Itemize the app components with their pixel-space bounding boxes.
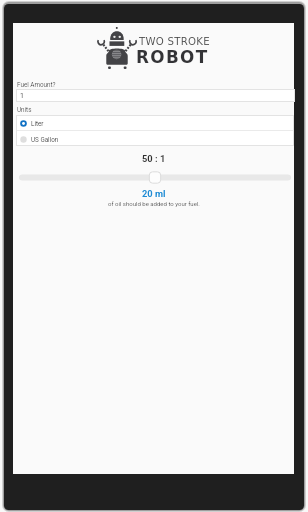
staticText: Liter: [31, 120, 44, 127]
staticText: ROBOT: [136, 47, 209, 67]
staticText: 20 ml: [142, 188, 166, 199]
staticText: of oil should be added to your fuel.: [108, 200, 200, 207]
button[interactable]: 1: [16, 89, 295, 102]
other: Two Stroke Robot logo: [97, 27, 137, 69]
staticText: Fuel Amount?: [17, 81, 56, 88]
button[interactable]: Liter: [16, 115, 294, 131]
staticText: 1: [20, 92, 24, 100]
staticText: 50 : 1: [142, 153, 166, 164]
staticText: US Gallon: [31, 136, 59, 143]
button[interactable]: Mix ratio slider: [19, 171, 291, 184]
staticText: TWO STROKE: [139, 36, 210, 48]
button[interactable]: US Gallon: [16, 131, 294, 147]
staticText: Units: [17, 106, 32, 113]
